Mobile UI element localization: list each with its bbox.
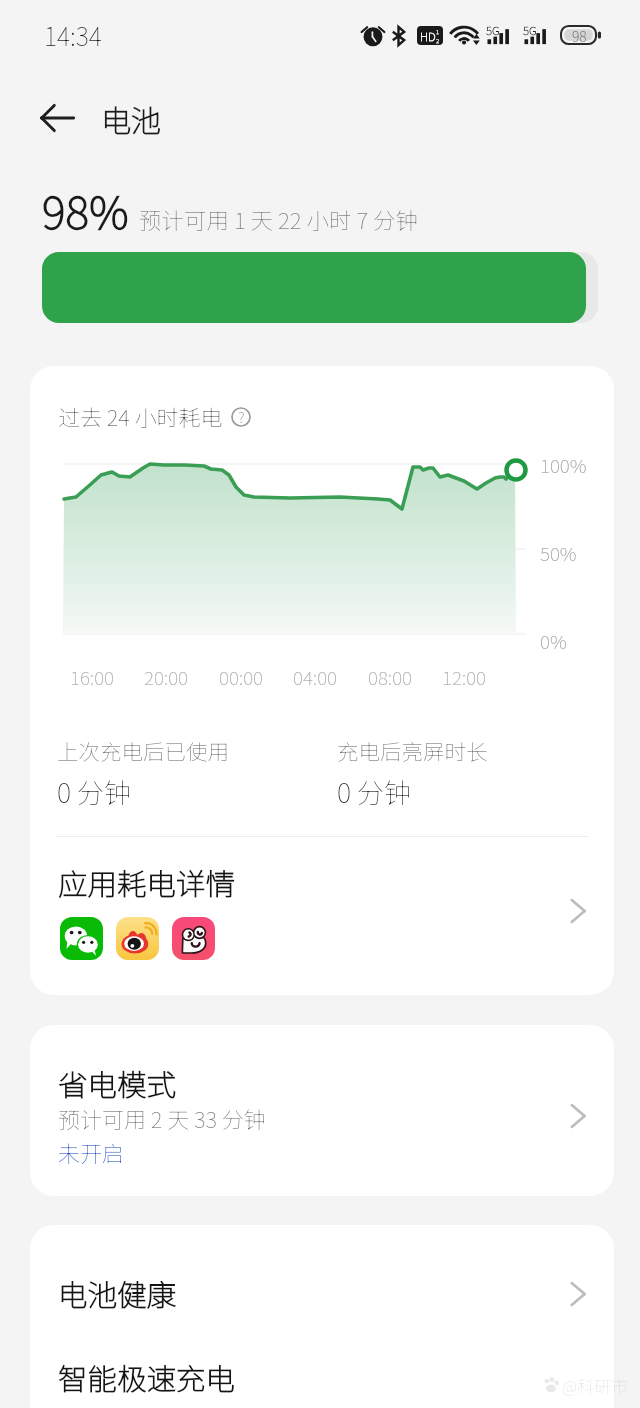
staticText: 过去 24 小时耗电 [58, 400, 223, 432]
staticText: 100% [540, 451, 587, 479]
staticText: 12:00 [442, 663, 486, 691]
button[interactable]: Back [31, 92, 83, 144]
button[interactable]: 省电模式 [30, 1025, 614, 1196]
staticText: 电池 [101, 97, 161, 140]
staticText: 14:34 [44, 17, 102, 53]
button[interactable]: 智能极速充电 [30, 1320, 614, 1408]
staticText: 上次充电后已使用 [57, 735, 230, 766]
staticText: 省电模式 [58, 1062, 177, 1105]
staticText: 04:00 [293, 663, 337, 691]
staticText: 电池健康 [58, 1272, 177, 1315]
staticText: 08:00 [368, 663, 412, 691]
staticText: 0 分钟 [57, 772, 132, 811]
staticText: 充电后亮屏时长 [337, 735, 488, 766]
staticText: 98 [572, 26, 587, 44]
staticText: 5G [486, 22, 500, 39]
staticText: HD [420, 28, 436, 45]
staticText: 5G [523, 22, 537, 39]
staticText: ? [238, 406, 245, 426]
button[interactable]: About battery usage [231, 407, 251, 427]
staticText: 98% [42, 177, 129, 242]
staticText: 0 分钟 [337, 772, 412, 811]
button[interactable]: 应用耗电详情 [30, 832, 614, 995]
staticText: 2 [436, 36, 440, 45]
staticText: 20:00 [144, 663, 188, 691]
staticText: 未开启 [58, 1136, 125, 1168]
staticText: 预计可用 1 天 22 小时 7 分钟 [139, 203, 419, 236]
staticText: 预计可用 2 天 33 分钟 [58, 1102, 266, 1134]
staticText: 1 [436, 27, 440, 36]
staticText: 16:00 [70, 663, 114, 691]
staticText: @科研市 [562, 1373, 629, 1398]
staticText: 00:00 [219, 663, 263, 691]
staticText: 50% [540, 539, 577, 567]
button[interactable]: 电池健康 [30, 1225, 614, 1320]
staticText: 应用耗电详情 [58, 861, 236, 904]
staticText: 智能极速充电 [58, 1356, 236, 1399]
staticText: 0% [540, 627, 567, 655]
